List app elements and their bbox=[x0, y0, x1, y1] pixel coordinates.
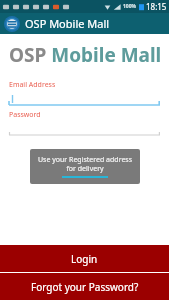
staticText: 100% bbox=[123, 3, 137, 10]
staticText: 18:15 bbox=[146, 1, 167, 12]
button[interactable] bbox=[9, 94, 160, 106]
staticText: Login bbox=[71, 252, 98, 266]
button[interactable] bbox=[9, 125, 160, 136]
staticText: Email Address bbox=[9, 80, 56, 90]
staticText: OSP Mobile Mall bbox=[25, 16, 110, 31]
staticText: Password bbox=[9, 110, 41, 120]
button[interactable]: OSP Mobile Mall logo bbox=[4, 16, 20, 32]
button[interactable]: Login bbox=[0, 245, 169, 272]
button[interactable]: Forgot your Password? bbox=[0, 273, 169, 300]
staticText: Forgot your Password? bbox=[31, 280, 139, 294]
staticText: OSP Mobile Mall bbox=[9, 42, 162, 68]
staticText: Use your Registered address for delivery bbox=[36, 155, 134, 173]
